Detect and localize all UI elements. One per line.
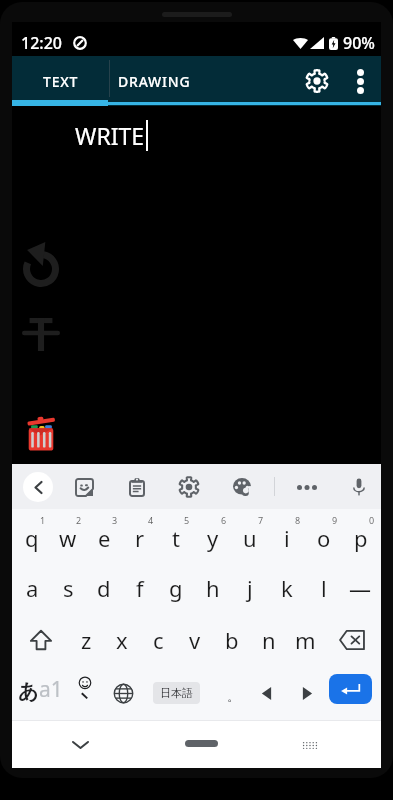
staticText: h: [206, 573, 220, 603]
button[interactable]: Change language: [105, 666, 141, 720]
button[interactable]: l: [305, 562, 342, 614]
staticText: d: [97, 573, 111, 603]
staticText: 12:20: [21, 32, 62, 54]
staticText: DRAWING: [118, 72, 191, 91]
button[interactable]: Voice input: [341, 469, 377, 505]
staticText: x: [116, 625, 128, 655]
button[interactable]: Settings: [295, 59, 339, 103]
button[interactable]: d: [86, 562, 122, 614]
staticText: l: [321, 573, 327, 603]
button[interactable]: More: [289, 469, 325, 505]
button[interactable]: 。: [216, 666, 250, 720]
button[interactable]: Undo: [17, 237, 65, 291]
staticText: f: [136, 573, 144, 603]
button[interactable]: Switch keyboard: [290, 725, 330, 765]
staticText: 1: [40, 514, 46, 526]
button[interactable]: s: [50, 562, 86, 614]
staticText: b: [225, 625, 239, 655]
staticText: m: [295, 625, 316, 655]
staticText: a1: [39, 675, 63, 704]
staticText: r: [135, 523, 145, 553]
staticText: c: [153, 625, 164, 655]
staticText: v: [189, 625, 201, 655]
button[interactable]: Switch input mode: [12, 662, 68, 716]
button[interactable]: Clipboard: [119, 469, 155, 505]
button[interactable]: h: [194, 562, 231, 614]
button[interactable]: p: [342, 509, 379, 562]
button[interactable]: Delete: [17, 408, 65, 456]
button[interactable]: j: [231, 562, 268, 614]
button[interactable]: 日本語: [143, 666, 209, 720]
button[interactable]: Move cursor right: [290, 666, 324, 720]
button[interactable]: r: [122, 509, 158, 562]
button[interactable]: a: [14, 562, 50, 614]
button[interactable]: Format: [17, 309, 65, 359]
button[interactable]: Enter: [329, 674, 372, 704]
button[interactable]: Hide keyboard: [60, 725, 100, 765]
staticText: u: [243, 523, 257, 553]
staticText: 8: [295, 514, 301, 526]
staticText: 7: [258, 514, 264, 526]
staticText: TEXT: [43, 72, 79, 91]
staticText: k: [281, 573, 293, 603]
button[interactable]: e: [86, 509, 122, 562]
staticText: 3: [112, 514, 118, 526]
staticText: 90%: [343, 32, 375, 54]
staticText: o: [317, 523, 331, 553]
staticText: n: [262, 625, 276, 655]
staticText: 0: [369, 514, 375, 526]
button[interactable]: v: [176, 614, 213, 666]
staticText: j: [247, 573, 253, 603]
button[interactable]: k: [268, 562, 305, 614]
button[interactable]: m: [287, 614, 324, 666]
button[interactable]: Home: [171, 725, 231, 761]
button[interactable]: i: [268, 509, 305, 562]
button[interactable]: Shift: [14, 614, 68, 666]
button[interactable]: Back: [23, 472, 53, 502]
button[interactable]: Emoji: [67, 661, 103, 715]
staticText: t: [172, 523, 180, 553]
staticText: あ: [18, 679, 39, 704]
button[interactable]: f: [122, 562, 158, 614]
button[interactable]: Move cursor left: [249, 666, 283, 720]
staticText: —: [349, 573, 372, 603]
button[interactable]: o: [305, 509, 342, 562]
staticText: q: [25, 523, 39, 553]
button[interactable]: u: [231, 509, 268, 562]
button[interactable]: g: [158, 562, 194, 614]
button[interactable]: b: [213, 614, 250, 666]
button[interactable]: —: [342, 562, 379, 614]
staticText: e: [98, 523, 111, 553]
staticText: g: [169, 573, 183, 603]
staticText: i: [284, 523, 290, 553]
staticText: WRITE: [75, 120, 145, 151]
staticText: 日本語: [160, 686, 193, 700]
button[interactable]: t: [158, 509, 194, 562]
staticText: y: [207, 523, 219, 553]
staticText: w: [59, 523, 77, 553]
staticText: 9: [332, 514, 338, 526]
button[interactable]: Backspace: [324, 614, 379, 666]
staticText: 6: [221, 514, 227, 526]
button[interactable]: DRAWING: [109, 59, 200, 103]
button[interactable]: Stickers: [66, 469, 102, 505]
button[interactable]: q: [14, 509, 50, 562]
button[interactable]: Themes: [224, 469, 260, 505]
button[interactable]: TEXT: [12, 59, 109, 103]
staticText: p: [354, 523, 368, 553]
button[interactable]: w: [50, 509, 86, 562]
staticText: 。: [227, 688, 240, 704]
button[interactable]: z: [68, 614, 104, 666]
button[interactable]: c: [140, 614, 176, 666]
button[interactable]: Keyboard settings: [171, 469, 207, 505]
staticText: a: [26, 573, 39, 603]
staticText: 5: [184, 514, 190, 526]
button[interactable]: x: [104, 614, 140, 666]
staticText: 4: [148, 514, 154, 526]
staticText: 2: [76, 514, 82, 526]
button[interactable]: More options: [338, 59, 382, 103]
staticText: s: [63, 573, 74, 603]
staticText: z: [81, 625, 92, 655]
button[interactable]: n: [250, 614, 287, 666]
button[interactable]: y: [194, 509, 231, 562]
